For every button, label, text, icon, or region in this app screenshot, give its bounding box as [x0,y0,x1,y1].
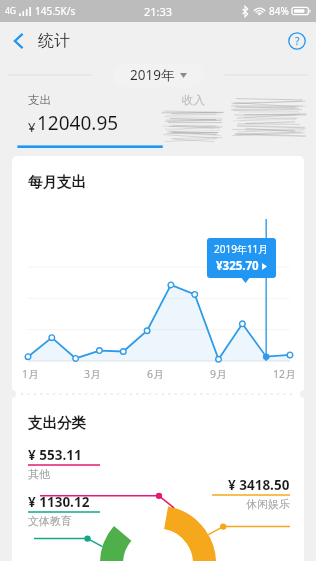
staticText: 收入 [182,93,205,107]
button[interactable]: 支出 [0,90,158,148]
button[interactable]: Help [278,22,316,60]
staticText: 其他 [28,467,50,481]
staticText: 文体教育 [28,514,72,528]
staticText: 6月 [147,367,164,381]
button[interactable]: 收入 [158,90,316,148]
staticText: ¥ 553.11 [28,446,82,464]
staticText: 84% [269,4,289,18]
staticText: 统计 [38,31,70,51]
staticText: 支出分类 [28,414,86,432]
staticText: ¥ [28,118,36,136]
staticText: 2019年 [130,66,175,84]
staticText: 支出 [28,93,51,107]
button[interactable]: 2019年11月 [207,238,276,278]
staticText: ¥ 1130.12 [28,493,90,511]
staticText: 145.5K/s [35,4,76,18]
button[interactable]: ¥ 3418.50 [212,476,290,511]
button[interactable]: ¥ 553.11 [28,446,100,481]
staticText: 3月 [84,367,101,381]
button[interactable]: Back [0,22,38,60]
staticText: 12月 [273,367,296,381]
staticText: ? [295,34,300,48]
staticText: 休闲娱乐 [246,497,290,511]
staticText: 4G [5,5,17,17]
staticText: ¥325.70 [216,258,259,274]
staticText: 2019年11月 [214,242,269,256]
button[interactable]: 2019年 [113,63,204,87]
staticText: 每月支出 [28,173,86,191]
staticText: 9月 [210,367,227,381]
staticText: ¥ 3418.50 [228,476,290,494]
staticText: 12040.95 [37,110,119,136]
staticText: 1月 [22,367,39,381]
staticText: 21:33 [144,4,173,19]
button[interactable]: ¥ 1130.12 [28,493,100,528]
